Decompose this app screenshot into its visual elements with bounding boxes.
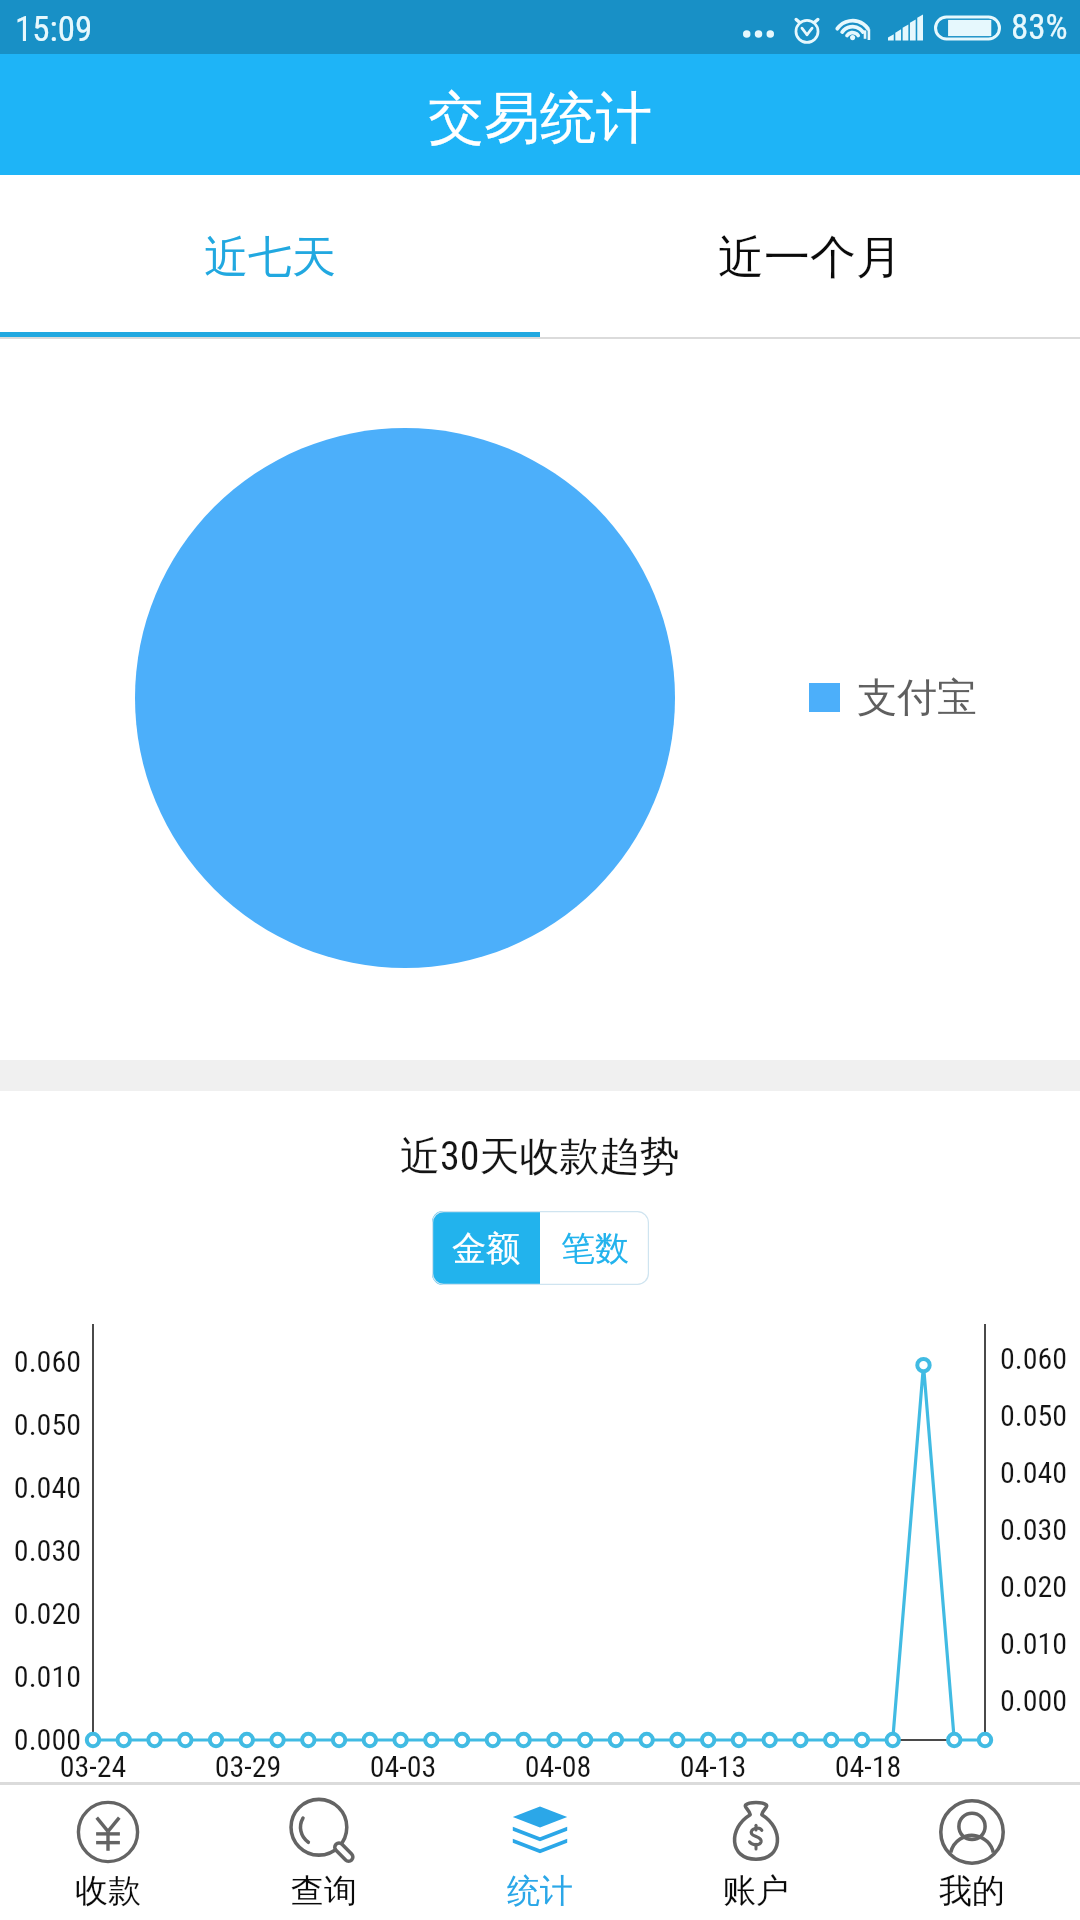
staticText: 0.040: [0, 1470, 81, 1505]
button[interactable]: 近七天: [0, 175, 540, 332]
button[interactable]: 收款: [0, 1785, 216, 1920]
staticText: 查询: [291, 1870, 357, 1912]
staticText: 0.010: [0, 1659, 81, 1694]
button[interactable]: 近一个月: [540, 175, 1080, 332]
staticText: 近30天收款趋势: [400, 1131, 680, 1181]
staticText: 04-13: [643, 1749, 783, 1784]
staticText: 金额: [452, 1227, 520, 1270]
staticText: 0.020: [1000, 1569, 1068, 1604]
staticText: 04-18: [798, 1749, 938, 1784]
staticText: 0.000: [1000, 1683, 1068, 1718]
staticText: 账户: [723, 1870, 789, 1912]
staticText: 交易统计: [428, 83, 652, 154]
staticText: 支付宝: [857, 672, 977, 722]
staticText: 近七天: [204, 230, 336, 285]
staticText: 0.020: [0, 1596, 81, 1631]
staticText: 0.050: [1000, 1398, 1068, 1433]
staticText: 0.040: [1000, 1455, 1068, 1490]
button[interactable]: 查询: [216, 1785, 432, 1920]
staticText: 笔数: [561, 1227, 629, 1270]
button[interactable]: 笔数: [540, 1211, 649, 1285]
staticText: 04-08: [488, 1749, 628, 1784]
staticText: 0.000: [0, 1722, 81, 1757]
staticText: 83%: [1011, 7, 1068, 48]
staticText: 15:09: [15, 9, 93, 50]
button[interactable]: 账户: [648, 1785, 864, 1920]
staticText: 0.030: [0, 1533, 81, 1568]
button[interactable]: 金额: [432, 1211, 540, 1285]
staticText: 03-29: [178, 1749, 318, 1784]
staticText: 0.060: [1000, 1341, 1068, 1376]
staticText: 04-03: [333, 1749, 473, 1784]
staticText: 0.050: [0, 1407, 81, 1442]
button[interactable]: 我的: [864, 1785, 1080, 1920]
staticText: 近一个月: [718, 229, 902, 287]
staticText: 统计: [507, 1870, 573, 1912]
button[interactable]: 统计: [432, 1785, 648, 1920]
staticText: 03-24: [23, 1749, 163, 1784]
staticText: 0.030: [1000, 1512, 1068, 1547]
staticText: 0.060: [0, 1344, 81, 1379]
staticText: 收款: [75, 1870, 141, 1912]
staticText: 我的: [939, 1870, 1005, 1912]
staticText: 0.010: [1000, 1626, 1068, 1661]
